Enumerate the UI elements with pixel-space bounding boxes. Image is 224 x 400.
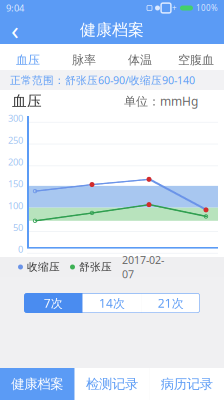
staticText: 正常范围：舒张压60-90/收缩压90-140 <box>10 73 195 87</box>
staticText: 舒张压 <box>79 260 112 273</box>
staticText: 病历记录 <box>161 376 213 392</box>
staticText: ‹ <box>11 13 19 47</box>
staticText: 50 <box>13 221 23 234</box>
staticText: 2017-02-07 <box>122 253 164 281</box>
button[interactable]: 检测记录 <box>75 368 149 400</box>
button[interactable]: 返回 <box>0 16 30 44</box>
button[interactable]: 7次 <box>24 293 83 313</box>
button[interactable]: 健康档案 <box>0 368 75 400</box>
button[interactable]: 血压 <box>0 44 56 70</box>
staticText: 0 <box>18 243 23 255</box>
button[interactable]: 体温 <box>112 44 168 70</box>
staticText: 300 <box>8 112 23 124</box>
button[interactable]: 空腹血 <box>168 44 224 70</box>
staticText: 100 <box>8 199 23 212</box>
staticText: 14次 <box>99 295 125 311</box>
button[interactable]: 病历记录 <box>149 368 224 400</box>
button[interactable]: 脉率 <box>56 44 112 70</box>
staticText: 血压 <box>16 53 40 67</box>
button[interactable]: 21次 <box>141 293 200 313</box>
staticText: 150 <box>8 177 23 190</box>
button[interactable]: 14次 <box>83 293 141 313</box>
staticText: 空腹血 <box>178 53 214 67</box>
staticText: 健康档案 <box>80 20 144 40</box>
staticText: 体温 <box>128 53 152 67</box>
staticText: 收缩压 <box>27 260 60 273</box>
staticText: 健康档案 <box>11 376 63 392</box>
staticText: 200 <box>8 156 23 168</box>
staticText: 100% <box>196 3 218 13</box>
staticText: 21次 <box>158 295 184 311</box>
staticText: 脉率 <box>72 53 96 67</box>
staticText: 250 <box>8 134 23 146</box>
staticText: 血压 <box>12 92 42 110</box>
staticText: 检测记录 <box>86 376 138 392</box>
staticText: + <box>172 3 177 13</box>
staticText: 7次 <box>44 295 63 311</box>
staticText: 9:04 <box>6 2 24 14</box>
staticText: 单位：mmHg <box>124 93 198 109</box>
